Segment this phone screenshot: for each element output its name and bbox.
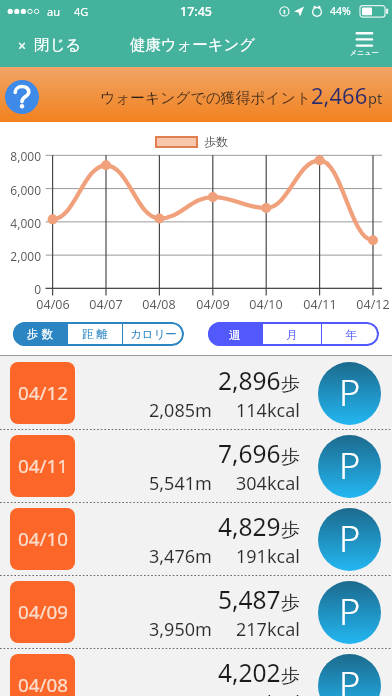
staticText: 44% xyxy=(330,4,351,18)
staticText: 304kcal xyxy=(236,471,300,496)
staticText: 217kcal xyxy=(236,617,300,642)
staticText: P xyxy=(339,368,361,417)
button[interactable]: 04/09 xyxy=(0,576,392,648)
button[interactable]: 歩 数 xyxy=(13,322,67,346)
button[interactable]: 月 xyxy=(263,322,321,346)
staticText: 04/08 xyxy=(135,296,183,313)
button[interactable]: × xyxy=(12,31,85,59)
staticText: 5,487 xyxy=(218,583,281,616)
staticText: 04/11 xyxy=(18,453,68,479)
button[interactable]: ヘルプ xyxy=(5,80,39,114)
staticText: 4,202 xyxy=(218,656,281,689)
staticText: 2,000 xyxy=(0,248,41,264)
staticText: 歩 xyxy=(281,518,300,542)
staticText: 月 xyxy=(286,327,298,342)
staticText: au xyxy=(47,4,60,19)
staticText: 04/09 xyxy=(18,599,68,625)
staticText: 04/09 xyxy=(189,296,237,313)
staticText: 166kcal xyxy=(236,690,300,696)
staticText: 04/10 xyxy=(242,296,290,313)
staticText: 0 xyxy=(0,281,41,297)
staticText: 歩数 xyxy=(204,134,228,149)
staticText: メニュー xyxy=(350,48,379,57)
staticText: 04/06 xyxy=(29,296,77,313)
staticText: 8,000 xyxy=(0,148,41,164)
staticText: 7,696 xyxy=(218,437,281,470)
staticText: 04/08 xyxy=(18,672,68,696)
staticText: 距 離 xyxy=(82,326,108,342)
staticText: × xyxy=(18,36,27,55)
button[interactable]: 年 xyxy=(322,322,379,346)
staticText: 114kcal xyxy=(236,398,300,423)
staticText: 歩 数 xyxy=(27,326,53,342)
staticText: 04/07 xyxy=(82,296,130,313)
staticText: P xyxy=(339,587,361,636)
staticText: 4,829 xyxy=(218,510,281,543)
staticText: ウォーキングでの獲得ポイント xyxy=(100,89,311,108)
staticText: 歩 xyxy=(281,664,300,688)
staticText: 04/10 xyxy=(18,526,68,552)
staticText: 閉じる xyxy=(34,35,82,55)
staticText: P xyxy=(339,514,361,563)
staticText: 191kcal xyxy=(236,544,300,569)
button[interactable]: 04/12 xyxy=(0,357,392,429)
staticText: 4,000 xyxy=(0,215,41,231)
staticText: 歩 xyxy=(281,445,300,469)
staticText: 04/11 xyxy=(296,296,344,313)
staticText: 健康ウォーキング xyxy=(130,35,255,54)
staticText: P xyxy=(339,660,361,696)
button[interactable]: 距 離 xyxy=(68,322,122,346)
button[interactable]: 04/08 xyxy=(0,649,392,696)
staticText: 04/12 xyxy=(349,296,392,313)
button[interactable]: 04/10 xyxy=(0,503,392,575)
staticText: pt xyxy=(368,88,383,108)
staticText: 17:45 xyxy=(180,3,213,20)
staticText: 4G xyxy=(74,4,89,19)
staticText: 歩 xyxy=(281,591,300,615)
button[interactable]: メニュー xyxy=(348,31,381,58)
button[interactable]: 04/11 xyxy=(0,430,392,502)
staticText: 年 xyxy=(345,327,357,342)
staticText: 2,466 xyxy=(311,80,368,110)
button[interactable]: ヘルプ xyxy=(0,67,392,122)
staticText: 3,950m xyxy=(149,617,212,642)
button[interactable]: カロリー xyxy=(123,322,184,346)
staticText: 5,541m xyxy=(149,471,212,496)
staticText: 歩 xyxy=(281,372,300,396)
staticText: 2,896 xyxy=(218,364,281,397)
staticText: カロリー xyxy=(130,327,177,341)
staticText: 6,000 xyxy=(0,182,41,198)
staticText: 3,476m xyxy=(149,544,212,569)
staticText: P xyxy=(339,441,361,490)
staticText: 2,085m xyxy=(149,398,212,423)
staticText: 週 xyxy=(229,327,241,342)
staticText: 04/12 xyxy=(18,380,68,406)
button[interactable]: 週 xyxy=(208,322,262,346)
